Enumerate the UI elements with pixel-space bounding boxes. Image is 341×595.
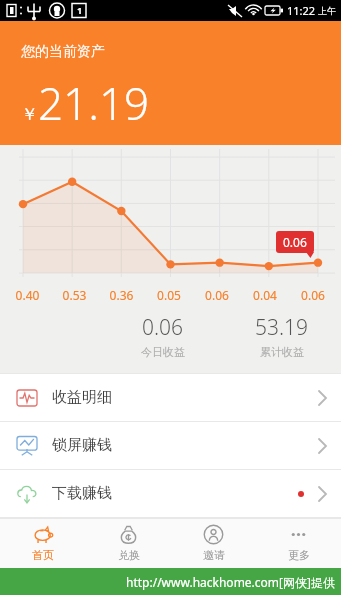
staticText: 21.19 xyxy=(38,73,150,133)
staticText: 53.19 xyxy=(255,313,309,342)
staticText: ￥ xyxy=(21,104,38,125)
button[interactable]: 更多 xyxy=(256,518,341,568)
staticText: 锁屏赚钱 xyxy=(52,436,112,455)
staticText: 今日收益 xyxy=(141,345,185,359)
staticText: 累计收益 xyxy=(260,345,304,359)
button[interactable]: 邀请 xyxy=(171,518,256,568)
staticText: 更多 xyxy=(288,548,310,562)
staticText: 0.06 xyxy=(283,234,307,250)
button[interactable]: 锁屏赚钱 xyxy=(0,422,341,469)
staticText: 兑换 xyxy=(118,548,140,562)
staticText: 上午 xyxy=(318,5,336,16)
button[interactable]: 收益明细 xyxy=(0,374,341,421)
staticText: 0.04 xyxy=(241,287,289,303)
staticText: 邀请 xyxy=(203,548,225,562)
staticText: 0.06 xyxy=(142,313,184,342)
staticText: 0.36 xyxy=(98,287,145,303)
staticText: 0.53 xyxy=(51,287,98,303)
staticText: http://www.hackhome.com[网侠]提供 xyxy=(126,574,335,590)
staticText: 1 xyxy=(77,4,83,16)
button[interactable]: 下载赚钱 xyxy=(0,470,341,517)
button[interactable]: 兑换 xyxy=(86,518,171,568)
staticText: 收益明细 xyxy=(52,388,112,407)
staticText: 下载赚钱 xyxy=(52,484,112,503)
staticText: 您的当前资产 xyxy=(21,43,105,61)
button[interactable]: 首页 xyxy=(0,518,86,568)
staticText: 0.40 xyxy=(4,287,51,303)
staticText: 11:22 xyxy=(287,3,316,18)
staticText: 0.05 xyxy=(145,287,193,303)
staticText: 0.06 xyxy=(289,287,337,303)
staticText: 0.06 xyxy=(193,287,241,303)
staticText: 首页 xyxy=(32,548,54,562)
